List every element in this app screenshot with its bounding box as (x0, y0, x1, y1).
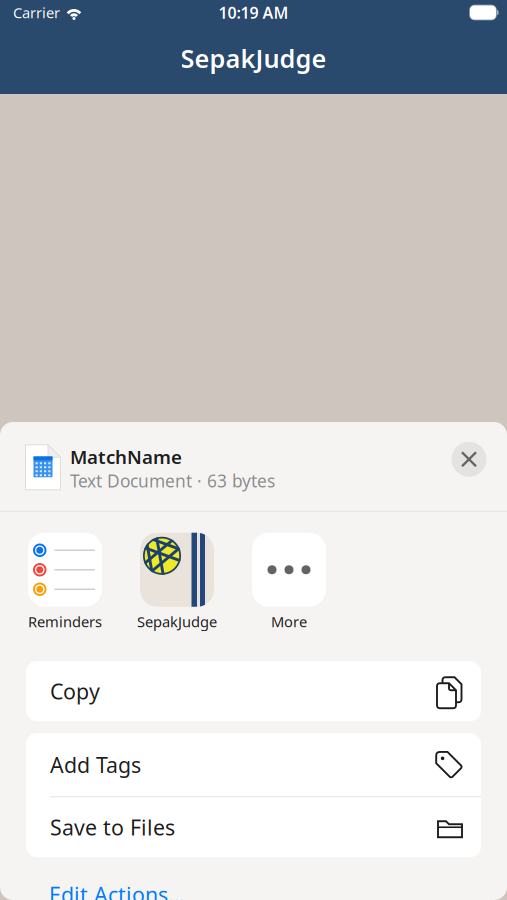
staticText: MatchName (70, 444, 182, 469)
button[interactable]: Save to Files (26, 797, 481, 857)
staticText: Add Tags (50, 751, 141, 779)
staticText: Copy (50, 677, 100, 705)
button[interactable]: Close (447, 437, 491, 481)
staticText: Edit Actions… (49, 880, 185, 900)
staticText: 10:19 AM (218, 2, 288, 23)
staticText: SepakJudge (180, 41, 326, 75)
staticText: Carrier (13, 3, 60, 22)
button[interactable]: Edit Actions… (0, 857, 507, 900)
button[interactable]: Reminders (9, 533, 121, 631)
button[interactable]: SepakJudge (121, 533, 233, 631)
button[interactable]: More (233, 533, 345, 631)
staticText: SepakJudge (137, 612, 217, 631)
button[interactable]: Copy (26, 661, 481, 721)
staticText: More (271, 612, 307, 631)
staticText: Reminders (28, 612, 102, 631)
button[interactable]: Add Tags (26, 733, 481, 796)
staticText: Text Document · 63 bytes (70, 469, 275, 492)
staticText: Save to Files (50, 813, 175, 841)
